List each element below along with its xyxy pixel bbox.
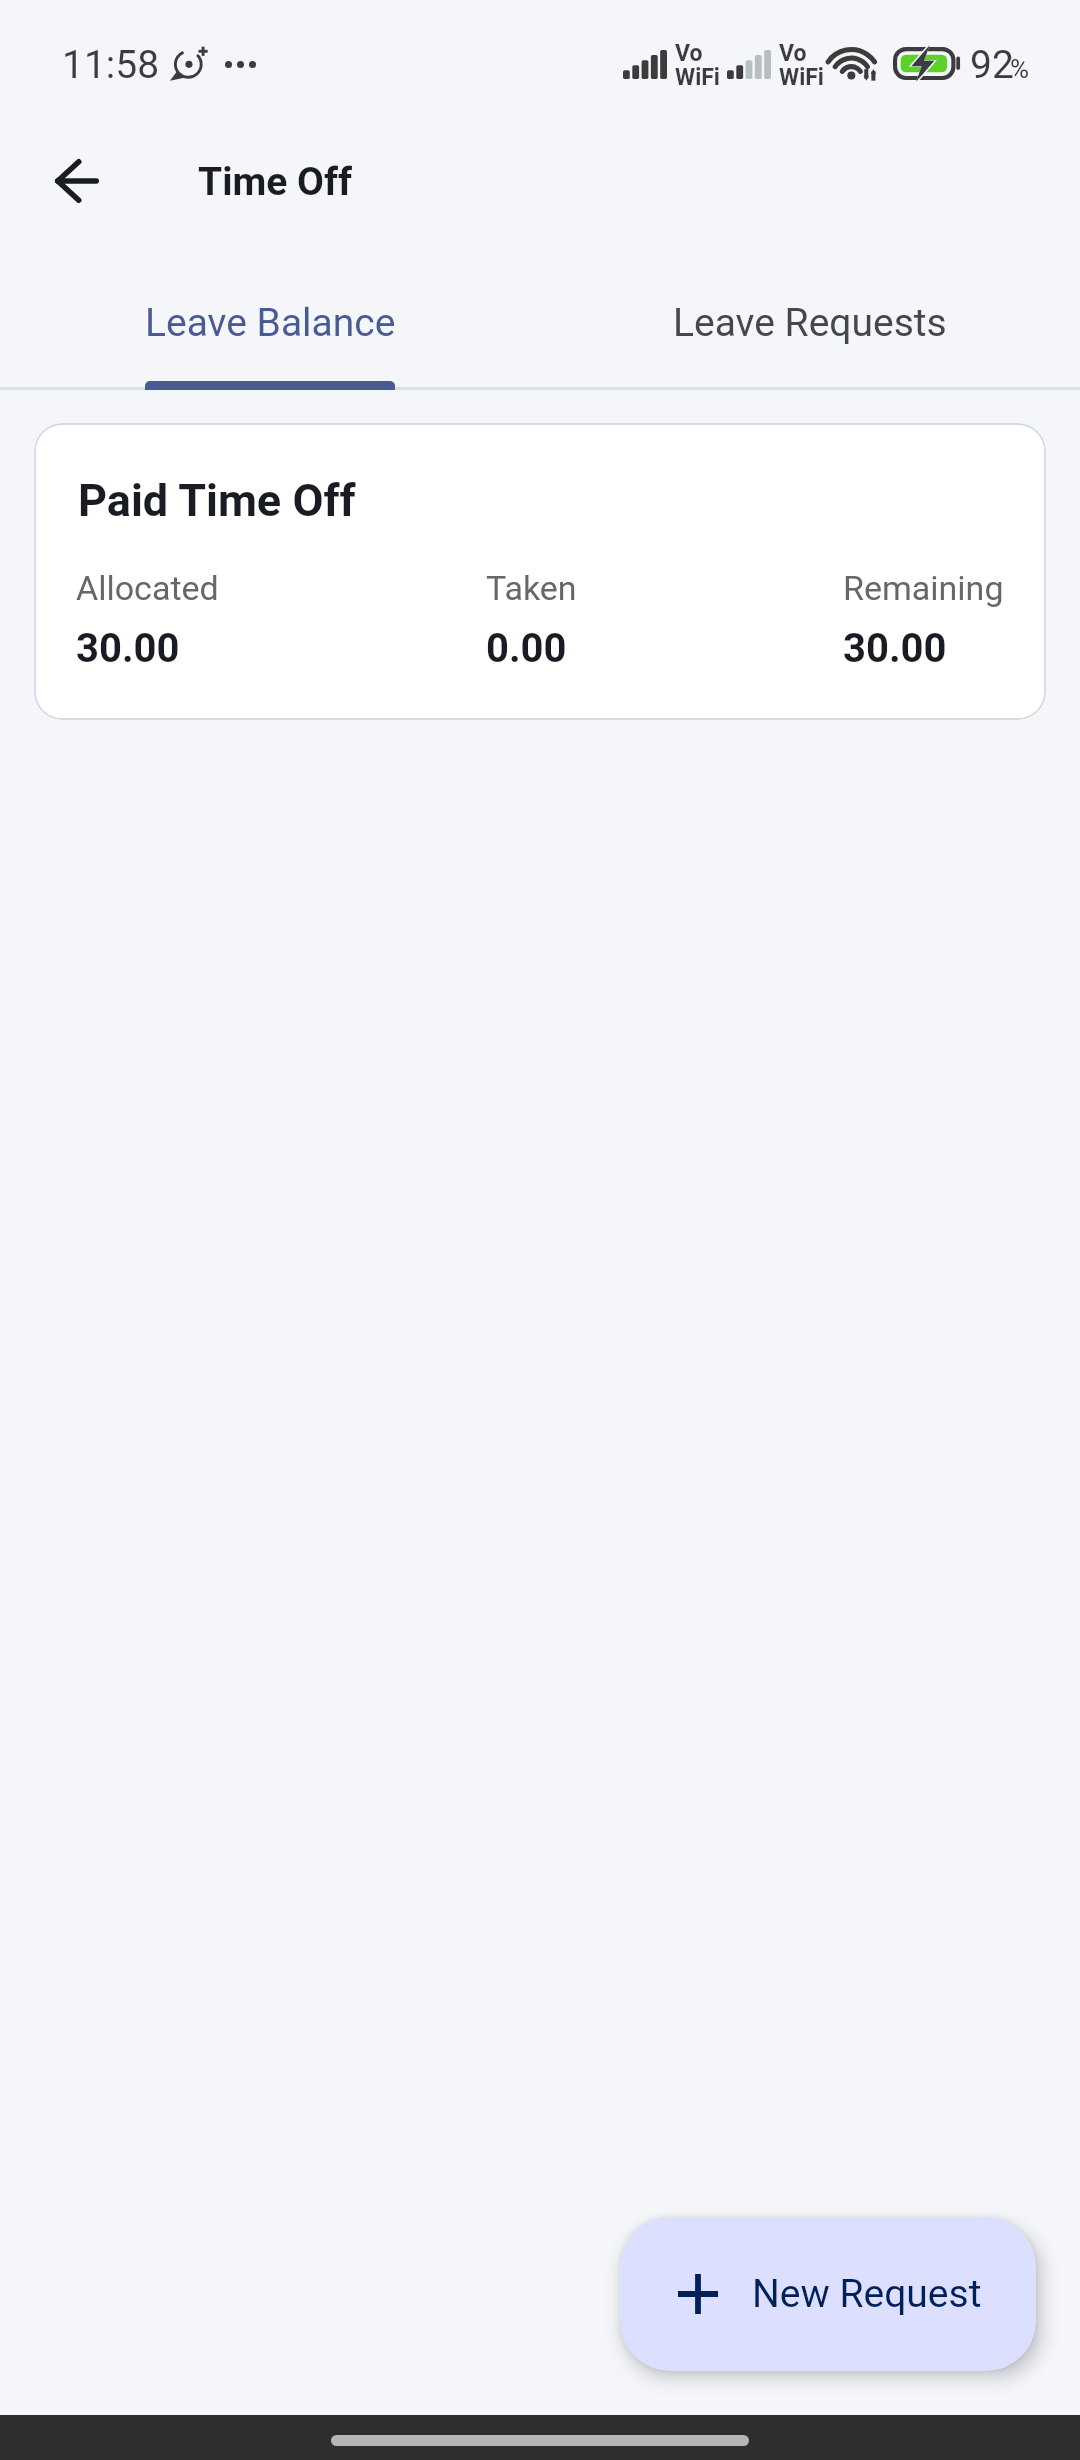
- staticText: Paid Time Off: [78, 474, 356, 527]
- staticText: 30.00: [843, 625, 947, 672]
- staticText: WiFi: [675, 64, 720, 91]
- staticText: Taken: [486, 568, 577, 608]
- button[interactable]: Leave Requests: [540, 255, 1080, 390]
- button[interactable]: New Request: [620, 2217, 1036, 2371]
- staticText: Vo: [675, 40, 703, 67]
- staticText: New Request: [752, 2271, 982, 2317]
- staticText: 0.00: [486, 625, 567, 672]
- button[interactable]: Back: [29, 133, 125, 229]
- staticText: Remaining: [843, 568, 1004, 608]
- button[interactable]: Paid Time Off: [34, 423, 1046, 720]
- staticText: 92: [970, 42, 1014, 88]
- staticText: Vo: [779, 40, 807, 67]
- staticText: 11:58: [62, 42, 160, 88]
- staticText: 30.00: [76, 625, 180, 672]
- staticText: Time Off: [198, 159, 352, 205]
- staticText: Leave Balance: [145, 300, 396, 346]
- staticText: WiFi: [779, 64, 824, 91]
- button[interactable]: Leave Balance: [0, 255, 540, 390]
- staticText: Leave Requests: [673, 300, 947, 346]
- staticText: %: [1010, 54, 1030, 84]
- staticText: Allocated: [76, 568, 219, 608]
